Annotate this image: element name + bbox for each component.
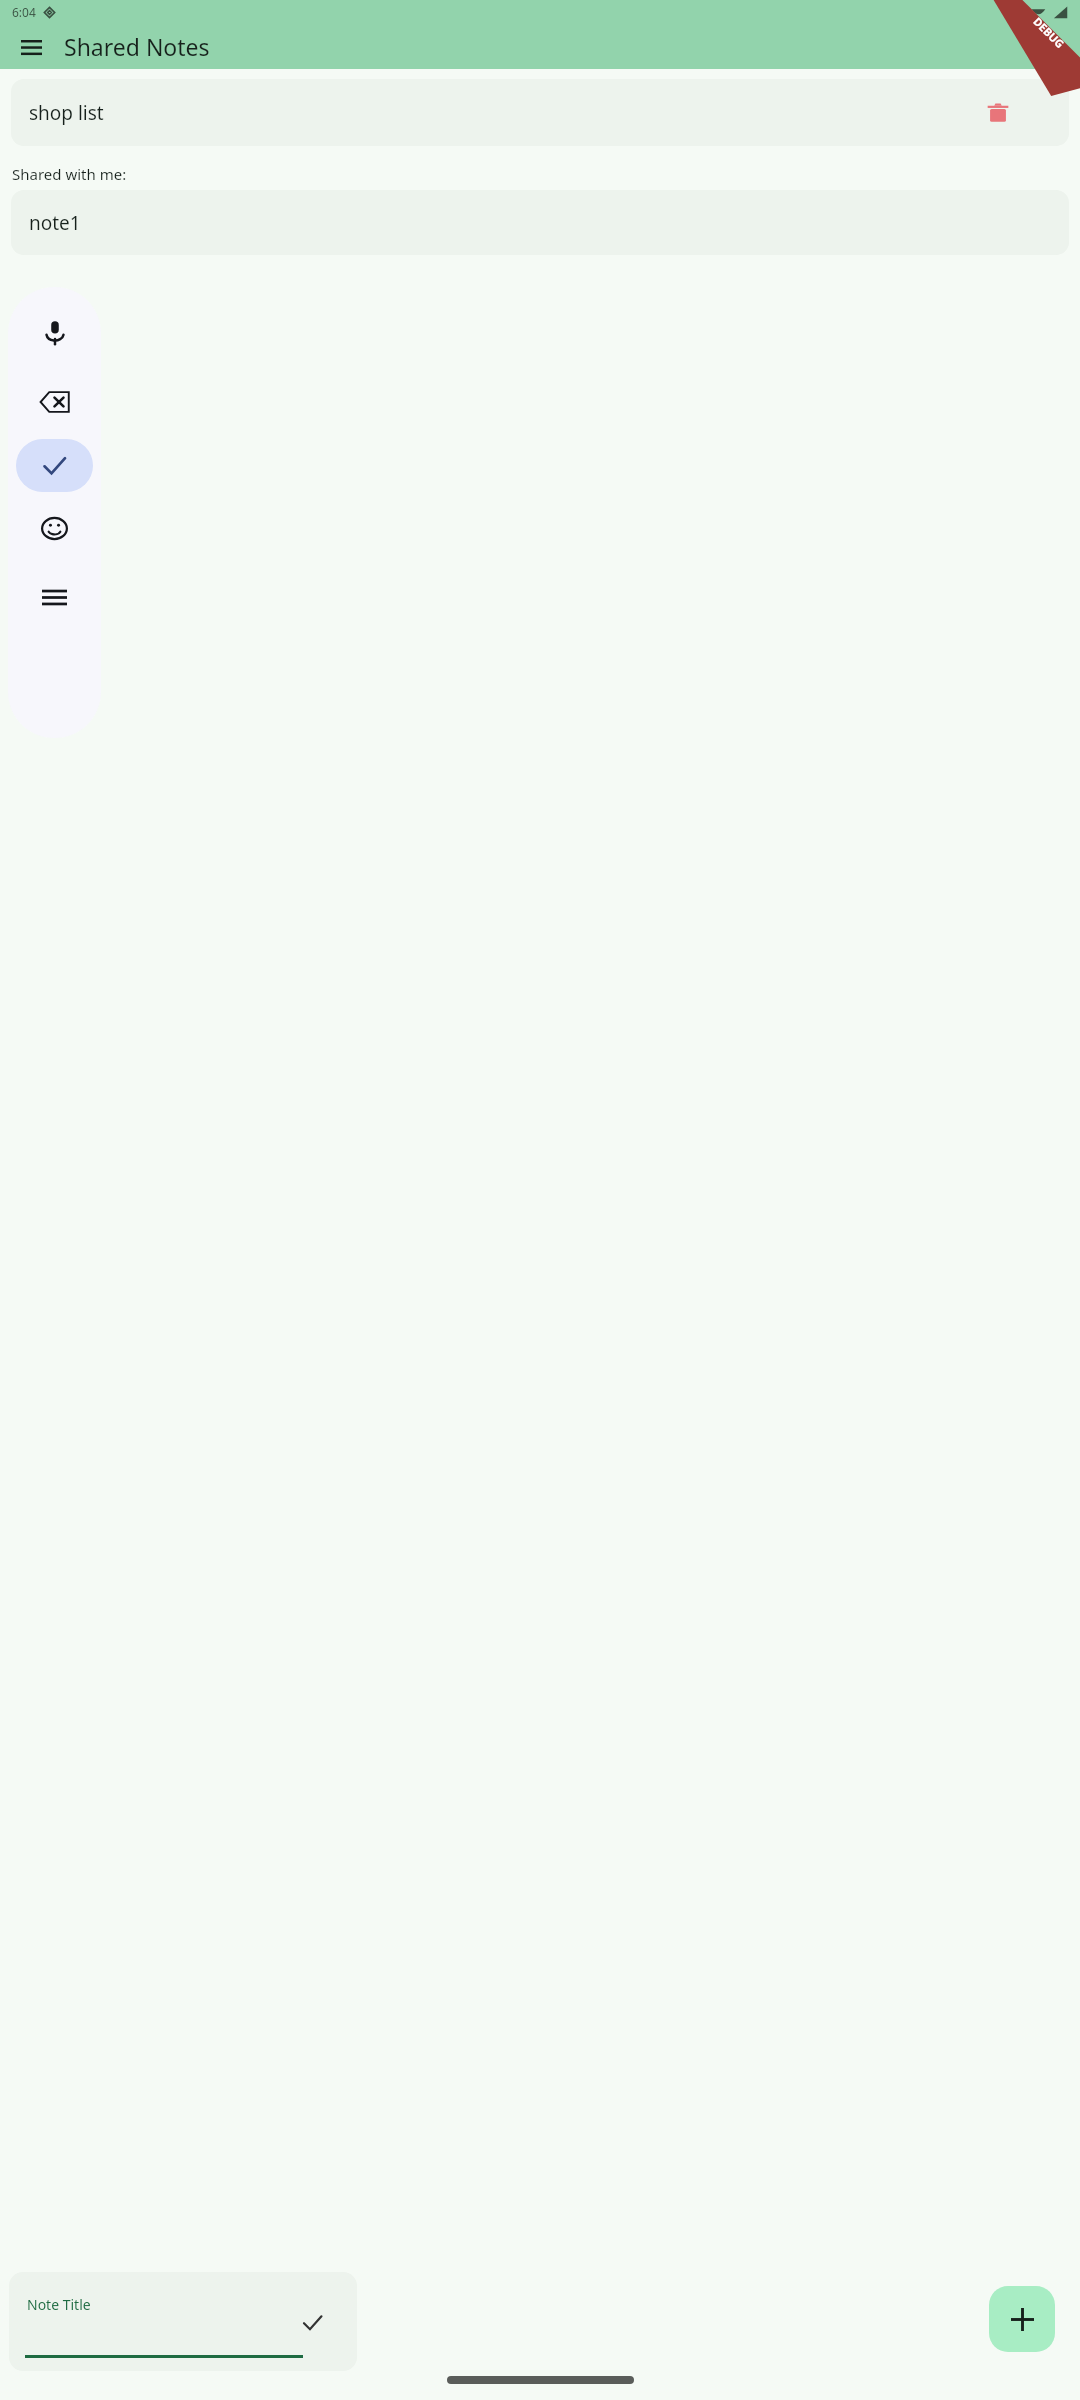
button[interactable]: Save note bbox=[293, 2303, 331, 2341]
button[interactable]: Emoji bbox=[16, 502, 93, 555]
button[interactable]: Add note bbox=[989, 2286, 1055, 2352]
staticText: Note Title bbox=[27, 2295, 91, 2314]
button[interactable]: shop list bbox=[11, 79, 1069, 146]
staticText: shop list bbox=[29, 100, 104, 126]
button[interactable]: note1 bbox=[11, 190, 1069, 255]
staticText: Shared Notes bbox=[64, 31, 210, 62]
button[interactable]: Note Title bbox=[9, 2272, 357, 2371]
staticText: DEBUG bbox=[1030, 14, 1068, 51]
button[interactable]: Delete note bbox=[980, 95, 1016, 131]
button[interactable]: Backspace bbox=[16, 375, 93, 428]
button[interactable]: Keyboard settings bbox=[16, 571, 93, 624]
staticText: 6:04 bbox=[12, 4, 36, 20]
button[interactable]: Confirm bbox=[16, 439, 93, 492]
button[interactable]: Open navigation menu bbox=[14, 30, 48, 64]
staticText: Shared with me: bbox=[12, 164, 127, 184]
staticText: note1 bbox=[29, 210, 81, 236]
button[interactable]: Voice input bbox=[16, 306, 93, 359]
